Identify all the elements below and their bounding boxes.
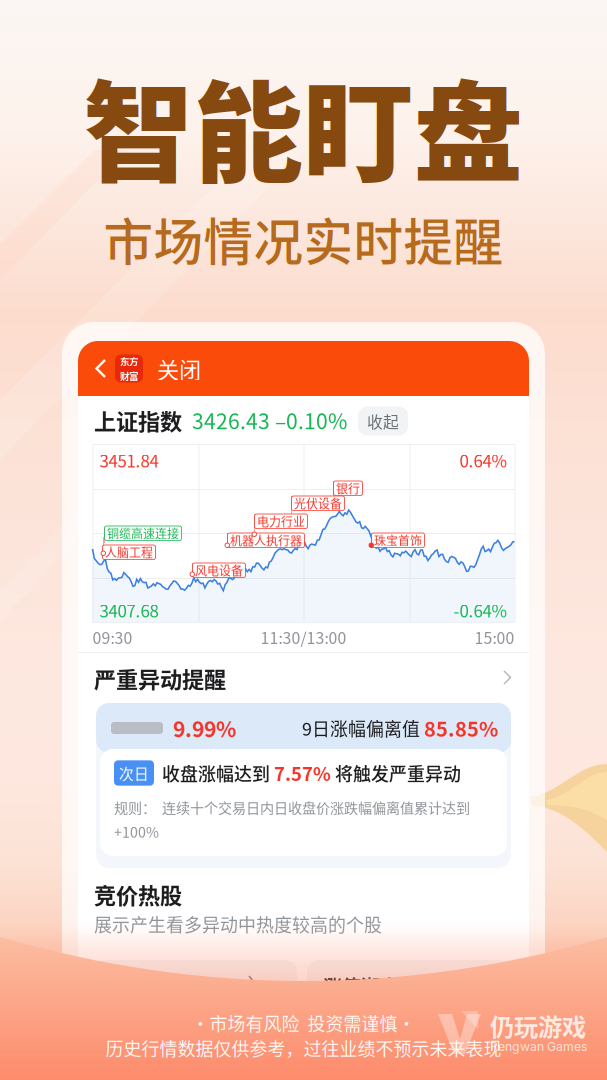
staticText: 上证指数 xyxy=(94,404,182,436)
staticText: Rengwan Games xyxy=(490,1039,587,1054)
staticText: 竞价热股 xyxy=(94,878,182,910)
staticText: 85.85% xyxy=(424,713,498,742)
staticText: 09:30 xyxy=(92,626,132,648)
staticText: 3451.84 xyxy=(99,448,158,472)
staticText: ·市场有风险 投资需谨慎· xyxy=(191,1010,415,1036)
staticText: 11:30/13:00 xyxy=(260,626,346,648)
staticText: 7.57% xyxy=(274,760,331,786)
staticText: 3407.68 xyxy=(99,598,158,622)
staticText: 关闭 xyxy=(157,352,201,384)
staticText: 财富 xyxy=(120,369,138,383)
staticText: 智能盯盘 xyxy=(83,46,523,205)
staticText: 历史行情数据仅供参考，过往业绩不预示未来表现 xyxy=(105,1035,501,1061)
button[interactable]: 严重异动提醒 xyxy=(78,653,529,703)
staticText: 3426.43 –0.10% xyxy=(182,405,347,435)
staticText: 铜缆高速连接 xyxy=(107,525,179,542)
staticText: 次日 xyxy=(119,762,149,784)
staticText: 机器人执行器 xyxy=(230,532,302,549)
staticText: 珠宝首饰 xyxy=(374,532,422,549)
staticText: 9.99% xyxy=(163,713,236,743)
staticText: 光伏设备 xyxy=(294,495,342,512)
button[interactable]: 关闭 xyxy=(143,344,215,392)
staticText: 东方 xyxy=(120,354,138,368)
staticText: -0.64% xyxy=(453,598,507,622)
staticText: 仍玩游戏 xyxy=(490,1008,586,1043)
staticText: 收盘涨幅达到 xyxy=(154,760,274,786)
staticText: 市场情况实时提醒 xyxy=(103,203,503,275)
staticText: 15:00 xyxy=(474,626,514,648)
staticText: 0.64% xyxy=(459,448,507,472)
staticText: 银行 xyxy=(336,480,360,497)
staticText: 将触发严重异动 xyxy=(331,760,461,786)
button[interactable]: 收起 xyxy=(358,407,408,435)
staticText: 收起 xyxy=(367,410,399,432)
staticText: 9日涨幅偏离值 xyxy=(302,715,424,741)
button[interactable]: 返回 xyxy=(87,350,115,387)
staticText: 规则： 连续十个交易日内日收盘价涨跌幅偏离值累计达到 xyxy=(114,797,470,817)
staticText: 严重异动提醒 xyxy=(94,662,226,694)
staticText: +100% xyxy=(114,821,159,842)
staticText: 风电设备 xyxy=(195,562,243,579)
staticText: 电力行业 xyxy=(257,513,305,530)
staticText: 人脑工程 xyxy=(105,544,153,561)
staticText: 涨停潮中 xyxy=(323,972,399,999)
staticText: 展示产生看多异动中热度较高的个股 xyxy=(94,911,382,937)
